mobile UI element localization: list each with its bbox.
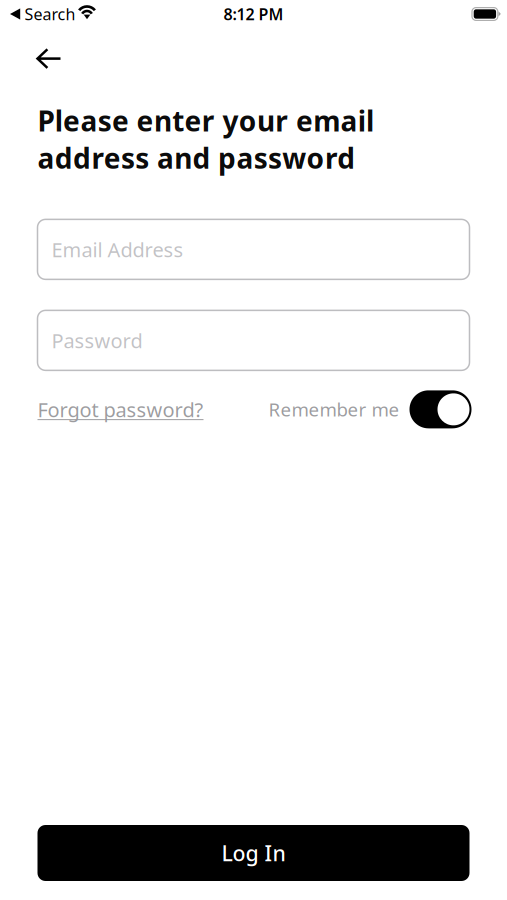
staticText: address and password [37, 139, 355, 176]
staticText: Email Address [51, 236, 183, 263]
staticText: Search [24, 3, 75, 25]
button[interactable]: Forgot password? [37, 396, 203, 423]
staticText: Log In [221, 839, 285, 867]
staticText: Please enter your email [37, 102, 374, 139]
staticText: 8:12 PM [223, 3, 283, 25]
staticText: Forgot password? [37, 396, 203, 423]
staticText: Remember me [268, 397, 399, 422]
button[interactable]: Remember me [399, 390, 469, 428]
staticText: Password [51, 327, 142, 354]
button[interactable]: Back [0, 39, 78, 78]
button[interactable]: Log In [37, 825, 469, 881]
